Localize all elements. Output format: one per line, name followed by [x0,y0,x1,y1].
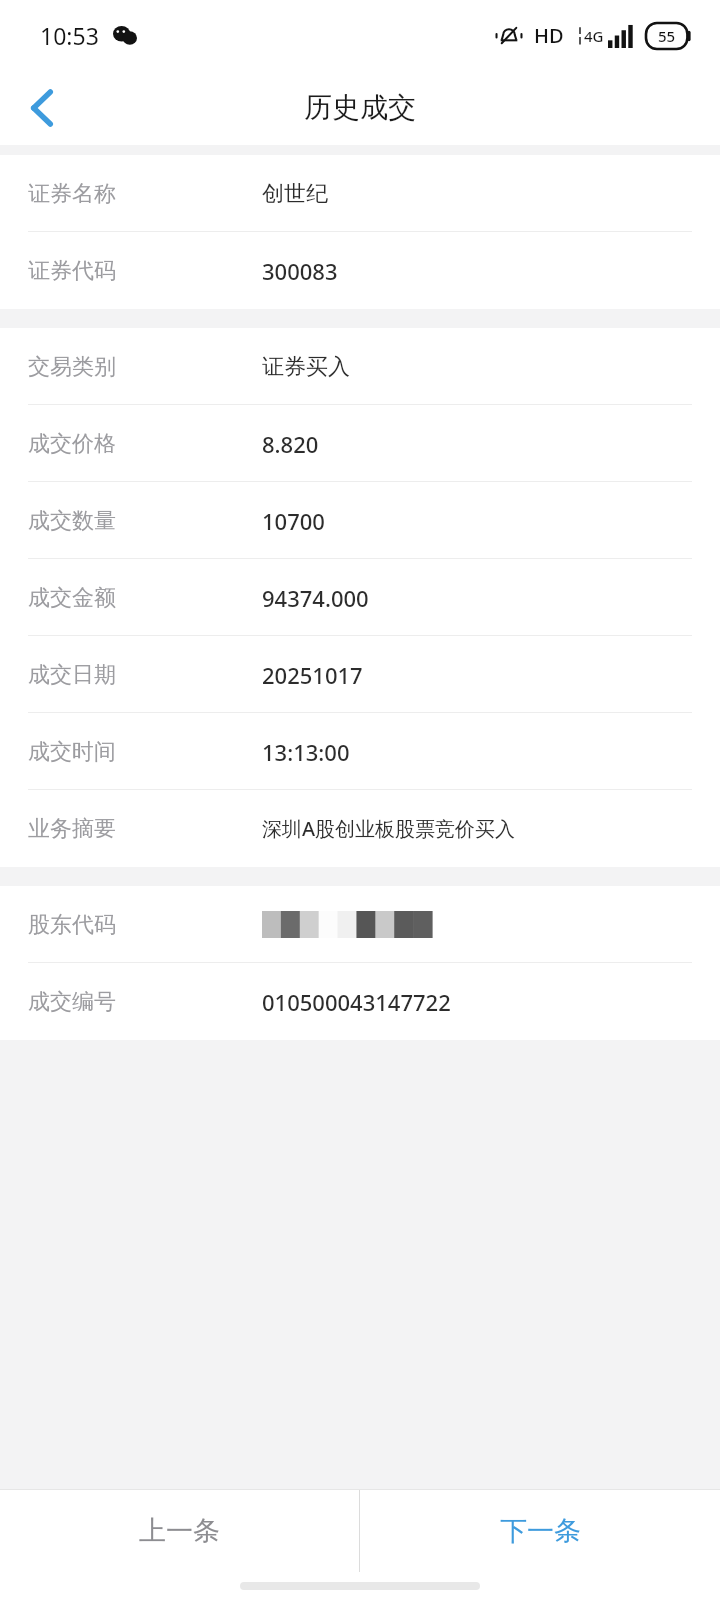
staticText: 成交数量 [28,507,116,535]
staticText: 证券名称 [28,180,116,208]
staticText: 成交金额 [28,584,116,612]
staticText: 股东代码 [28,911,116,939]
staticText: 交易类别 [28,353,116,381]
button[interactable]: 交易类别 [0,328,720,405]
staticText: 20251017 [262,660,363,690]
button[interactable]: 成交金额 [0,559,720,636]
button[interactable]: 下一条 [360,1490,720,1572]
staticText: HD [534,22,564,49]
button[interactable]: 上一条 [0,1490,359,1572]
staticText: 55 [658,26,676,46]
staticText: 8.820 [262,429,319,459]
button[interactable]: 成交日期 [0,636,720,713]
staticText: 下一条 [500,1514,581,1548]
button[interactable]: Back [0,70,84,145]
button[interactable]: 股东代码 [0,886,720,963]
staticText: 成交编号 [28,988,116,1016]
staticText: 成交价格 [28,430,116,458]
button[interactable]: 业务摘要 [0,790,720,867]
staticText: 证券买入 [262,353,350,381]
button[interactable]: 成交编号 [0,963,720,1040]
staticText: 成交日期 [28,661,116,689]
staticText: 深圳A股创业板股票竞价买入 [262,815,516,842]
staticText: 10:53 [40,20,99,51]
staticText: 010500043147722 [262,987,451,1017]
staticText: 13:13:00 [262,737,350,767]
button[interactable]: 证券名称 [0,155,720,232]
staticText: 证券代码 [28,257,116,285]
button[interactable]: 成交数量 [0,482,720,559]
button[interactable]: 成交时间 [0,713,720,790]
staticText: 业务摘要 [28,815,116,843]
staticText: 成交时间 [28,738,116,766]
staticText: 10700 [262,506,325,536]
button[interactable]: 成交价格 [0,405,720,482]
staticText: 历史成交 [304,90,416,125]
staticText: 300083 [262,256,338,286]
button[interactable]: 证券代码 [0,232,720,309]
staticText: 创世纪 [262,180,328,208]
staticText: 上一条 [139,1514,220,1548]
staticText: 94374.000 [262,583,369,613]
staticText: 4G [584,26,604,46]
